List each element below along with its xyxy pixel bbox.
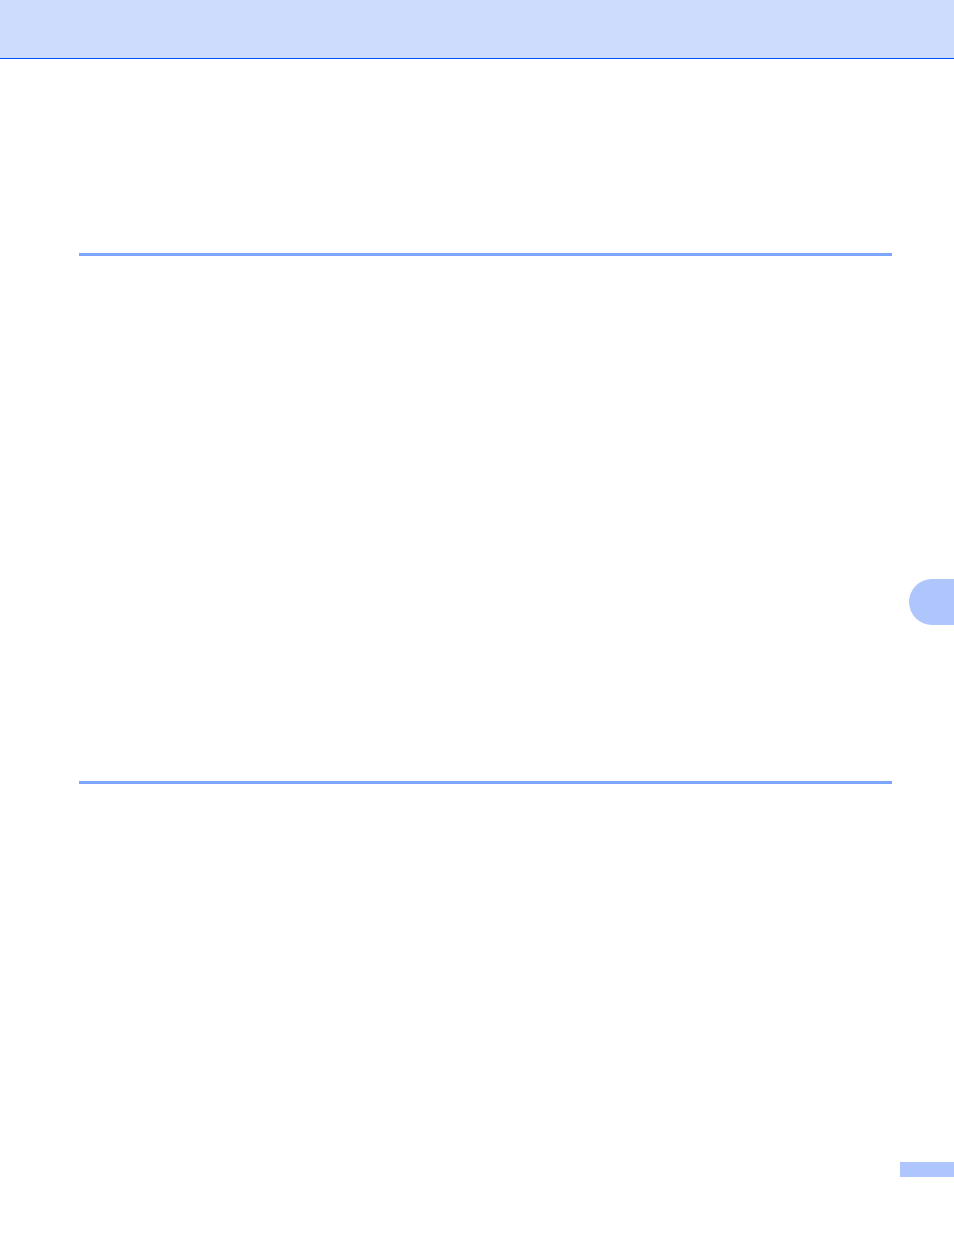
button[interactable]: [0, 784, 954, 1235]
other: Scroll position: [909, 579, 954, 625]
button[interactable]: [0, 256, 954, 781]
